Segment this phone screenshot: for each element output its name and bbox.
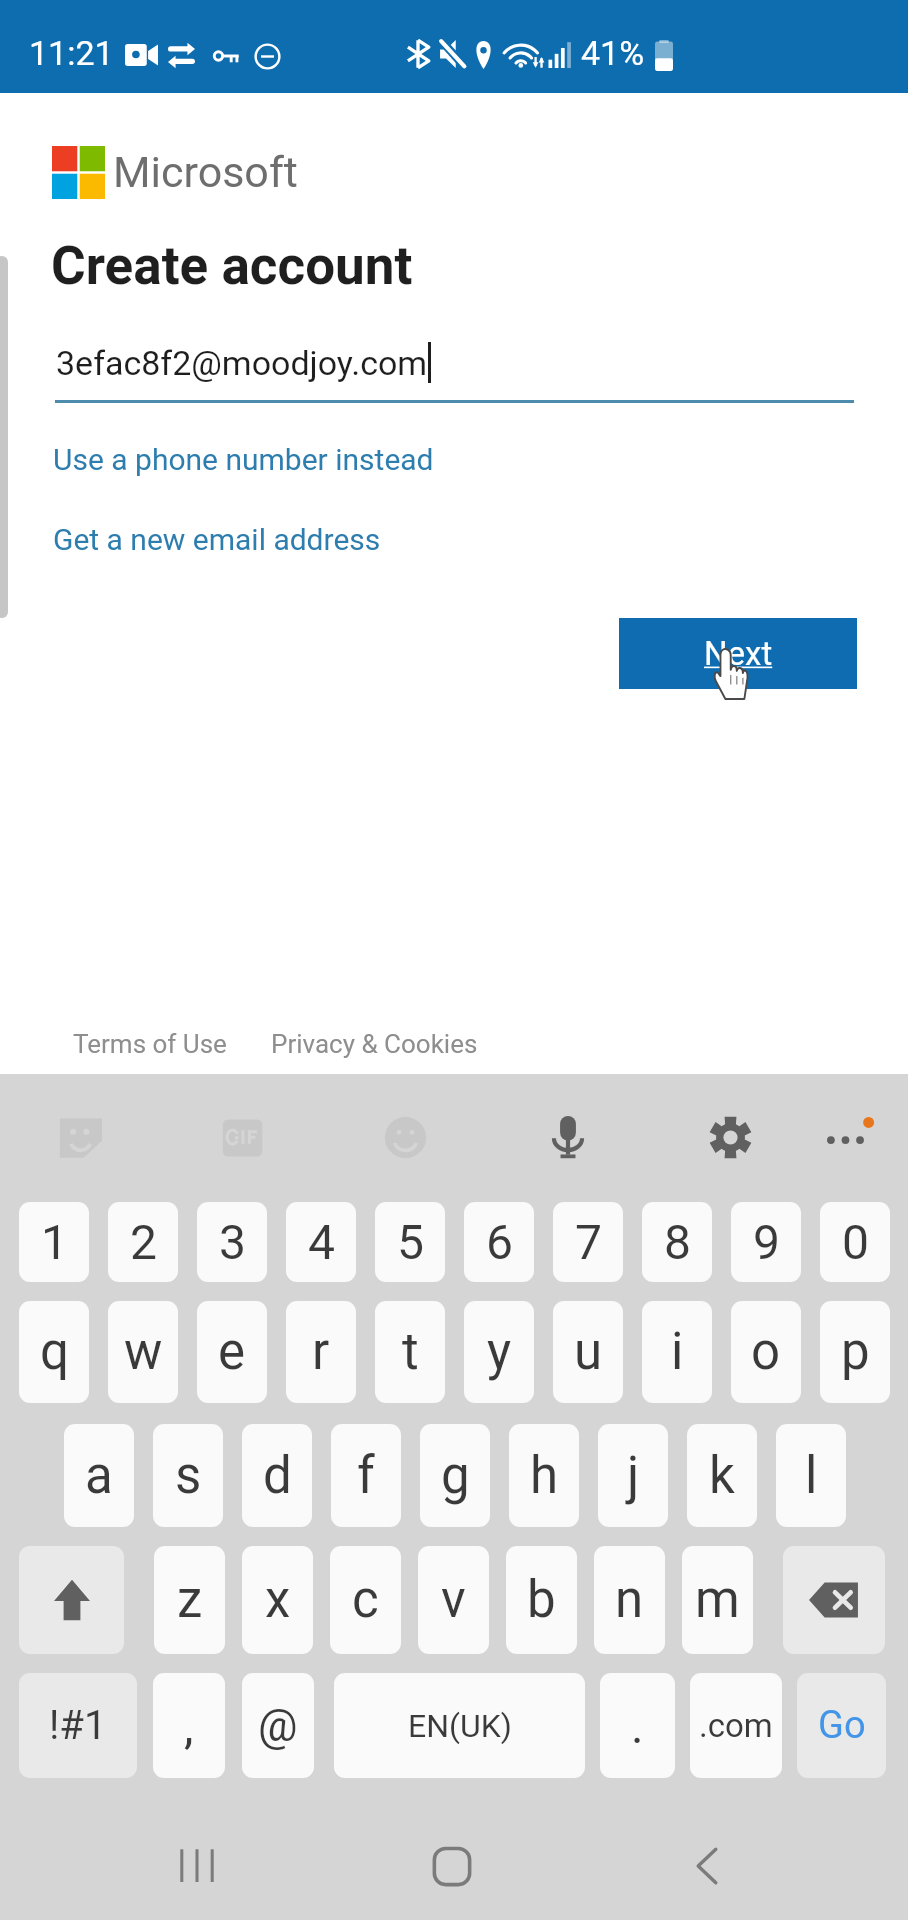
button[interactable]: Emoji <box>362 1094 448 1180</box>
staticText: r <box>312 1322 330 1382</box>
button[interactable]: z <box>154 1546 225 1654</box>
button[interactable]: 6 <box>464 1202 534 1282</box>
button[interactable]: 3 <box>197 1202 267 1282</box>
button[interactable]: Use a phone number instead <box>36 434 451 485</box>
button[interactable]: 8 <box>642 1202 712 1282</box>
button[interactable]: Get a new email address <box>36 514 398 565</box>
staticText: o <box>751 1322 781 1382</box>
button[interactable]: 5 <box>375 1202 445 1282</box>
staticText: EN(UK) <box>408 1707 512 1745</box>
staticText: Get a new email address <box>53 522 381 557</box>
button[interactable]: !#1 <box>19 1673 137 1778</box>
button[interactable]: g <box>420 1424 490 1527</box>
button[interactable]: 4 <box>286 1202 356 1282</box>
button[interactable]: GIF <box>199 1094 285 1180</box>
button[interactable]: n <box>594 1546 665 1654</box>
staticText: 7 <box>575 1214 602 1270</box>
button[interactable]: d <box>242 1424 312 1527</box>
button[interactable]: k <box>687 1424 757 1527</box>
button[interactable]: Backspace <box>783 1546 885 1654</box>
button[interactable]: 9 <box>731 1202 801 1282</box>
button[interactable]: r <box>286 1301 356 1403</box>
staticText: 41% <box>581 33 645 73</box>
button[interactable]: y <box>464 1301 534 1403</box>
button[interactable]: s <box>153 1424 223 1527</box>
button[interactable]: 0 <box>820 1202 890 1282</box>
button[interactable]: i <box>642 1301 712 1403</box>
staticText: j <box>627 1446 640 1506</box>
button[interactable]: a <box>64 1424 134 1527</box>
button[interactable]: Back <box>667 1826 747 1906</box>
button[interactable]: @ <box>242 1673 314 1778</box>
button[interactable]: l <box>776 1424 846 1527</box>
staticText: x <box>265 1570 291 1630</box>
button[interactable]: w <box>108 1301 178 1403</box>
button[interactable]: Privacy & Cookies <box>254 1020 495 1068</box>
staticText: h <box>530 1446 559 1506</box>
staticText: p <box>841 1322 870 1382</box>
button[interactable]: More options <box>803 1094 889 1180</box>
button[interactable]: f <box>331 1424 401 1527</box>
staticText: w <box>124 1322 163 1382</box>
staticText: 11:21 <box>29 33 114 73</box>
button[interactable]: EN(UK) <box>334 1673 585 1778</box>
staticText: t <box>402 1322 419 1382</box>
button[interactable]: Home <box>412 1827 492 1907</box>
button[interactable]: Go <box>797 1673 886 1778</box>
button[interactable]: 1 <box>19 1202 89 1282</box>
staticText: . <box>631 1698 644 1754</box>
button[interactable]: x <box>242 1546 313 1654</box>
staticText: d <box>263 1446 292 1506</box>
button[interactable]: j <box>598 1424 668 1527</box>
button[interactable]: Keyboard settings <box>687 1094 773 1180</box>
button[interactable]: q <box>19 1301 89 1403</box>
staticText: c <box>352 1570 379 1630</box>
staticText: m <box>695 1570 740 1630</box>
button[interactable]: h <box>509 1424 579 1527</box>
staticText: 5 <box>397 1214 424 1270</box>
button[interactable]: . <box>600 1673 675 1778</box>
staticText: Microsoft <box>113 147 298 197</box>
staticText: v <box>441 1570 466 1630</box>
button[interactable]: m <box>682 1546 753 1654</box>
staticText: @ <box>258 1700 298 1752</box>
staticText: Create account <box>51 235 413 297</box>
button[interactable]: , <box>153 1673 225 1778</box>
staticText: k <box>709 1446 735 1506</box>
staticText: 0 <box>842 1214 869 1270</box>
staticText: Next <box>704 634 773 673</box>
staticText: u <box>574 1322 603 1382</box>
staticText: n <box>615 1570 644 1630</box>
button[interactable]: p <box>820 1301 890 1403</box>
staticText: Privacy & Cookies <box>271 1029 478 1059</box>
staticText: b <box>527 1570 556 1630</box>
button[interactable]: e <box>197 1301 267 1403</box>
staticText: 3 <box>219 1214 246 1270</box>
button[interactable]: t <box>375 1301 445 1403</box>
staticText: 6 <box>486 1214 513 1270</box>
button[interactable]: Terms of Use <box>56 1020 244 1068</box>
staticText: s <box>175 1446 202 1506</box>
staticText: a <box>85 1446 113 1506</box>
button[interactable]: Next <box>619 618 857 689</box>
staticText: y <box>487 1322 512 1382</box>
button[interactable]: Shift <box>19 1546 124 1654</box>
staticText: f <box>357 1446 375 1506</box>
button[interactable]: u <box>553 1301 623 1403</box>
button[interactable]: 7 <box>553 1202 623 1282</box>
staticText: , <box>184 1698 194 1754</box>
button[interactable]: Voice input <box>525 1094 611 1180</box>
staticText: q <box>40 1322 69 1382</box>
staticText: .com <box>699 1706 773 1745</box>
button[interactable]: Stickers <box>38 1094 124 1180</box>
button[interactable]: o <box>731 1301 801 1403</box>
button[interactable]: .com <box>690 1673 782 1778</box>
button[interactable]: Recent apps <box>157 1826 237 1906</box>
button[interactable]: 2 <box>108 1202 178 1282</box>
staticText: Use a phone number instead <box>53 442 434 477</box>
staticText: Go <box>818 1703 866 1748</box>
staticText: 4 <box>308 1214 335 1270</box>
button[interactable]: b <box>506 1546 577 1654</box>
button[interactable]: v <box>418 1546 489 1654</box>
button[interactable]: c <box>330 1546 401 1654</box>
